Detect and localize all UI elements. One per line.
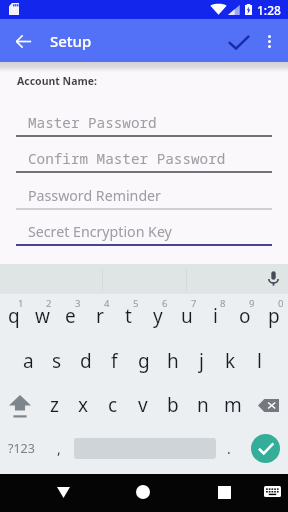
button[interactable]: w (28, 298, 56, 334)
staticText: q (8, 303, 20, 329)
staticText: j (199, 348, 204, 374)
staticText: b (167, 392, 179, 418)
button[interactable]: Master Password (16, 109, 272, 137)
staticText: Account Name: (17, 74, 97, 88)
button[interactable]: Hide keyboard (256, 475, 288, 507)
button[interactable]: k (216, 343, 245, 379)
staticText: x (78, 392, 89, 418)
staticText: 1 (18, 297, 24, 310)
button[interactable]: c (98, 387, 128, 423)
button[interactable]: s (42, 343, 71, 379)
staticText: Master Password (28, 113, 157, 132)
button[interactable]: d (71, 343, 100, 379)
staticText: e (65, 303, 76, 329)
button[interactable]: Password Reminder (16, 182, 272, 210)
button[interactable]: More options (254, 26, 284, 56)
button[interactable]: z (40, 387, 69, 423)
button[interactable]: b (158, 387, 188, 423)
staticText: 4 (104, 297, 110, 310)
staticText: k (225, 348, 236, 374)
staticText: 7 (191, 297, 197, 310)
button[interactable]: e (56, 298, 85, 334)
staticText: 9 (249, 297, 255, 310)
button[interactable]: Secret Encryption Key (16, 218, 272, 246)
button[interactable]: Save (222, 25, 256, 59)
button[interactable]: m (218, 387, 248, 423)
staticText: , (57, 439, 61, 458)
button[interactable]: Back (8, 26, 38, 56)
staticText: t (125, 303, 132, 329)
button[interactable]: . (216, 430, 242, 466)
staticText: h (167, 348, 179, 374)
staticText: 8 (220, 297, 226, 310)
staticText: Setup (50, 31, 92, 51)
button[interactable]: f (100, 343, 129, 379)
button[interactable]: ?123 (0, 430, 43, 466)
button[interactable]: n (188, 387, 218, 423)
staticText: Secret Encryption Key (28, 222, 172, 241)
staticText: c (108, 392, 118, 418)
staticText: Password Reminder (28, 186, 161, 205)
button[interactable]: Done (251, 434, 280, 463)
staticText: 2 (46, 297, 52, 310)
button[interactable]: l (245, 343, 274, 379)
button[interactable]: x (69, 387, 98, 423)
staticText: f (111, 348, 118, 374)
button[interactable]: Backspace (248, 387, 288, 423)
staticText: u (181, 303, 193, 329)
button[interactable]: p (259, 298, 288, 334)
staticText: 6 (162, 297, 168, 310)
button[interactable]: v (128, 387, 158, 423)
button[interactable]: g (129, 343, 158, 379)
staticText: z (50, 392, 59, 418)
button[interactable]: j (187, 343, 216, 379)
staticText: . (227, 439, 231, 458)
staticText: v (138, 392, 148, 418)
button[interactable]: h (158, 343, 187, 379)
button[interactable]: o (230, 298, 259, 334)
button[interactable]: Home (126, 475, 160, 509)
button[interactable]: Voice input (262, 267, 284, 289)
button[interactable]: Recent apps (207, 475, 241, 509)
staticText: Confirm Master Password (28, 149, 226, 168)
staticText: 3 (75, 297, 81, 310)
button[interactable]: a (14, 343, 42, 379)
staticText: i (213, 303, 218, 329)
button[interactable]: y (143, 298, 172, 334)
button[interactable]: i (201, 298, 230, 334)
staticText: 5 (133, 297, 139, 310)
staticText: w (35, 303, 50, 329)
staticText: r (96, 303, 104, 329)
staticText: y (153, 303, 163, 329)
button[interactable]: r (85, 298, 114, 334)
staticText: ?123 (8, 440, 35, 457)
button[interactable]: Shift (0, 387, 40, 423)
button[interactable]: t (114, 298, 143, 334)
button[interactable]: u (172, 298, 201, 334)
staticText: n (197, 392, 209, 418)
button[interactable]: Back (46, 475, 80, 509)
button[interactable]: Confirm Master Password (16, 145, 272, 173)
staticText: m (224, 392, 242, 418)
staticText: g (138, 348, 150, 374)
staticText: l (257, 348, 262, 374)
staticText: 0 (278, 297, 284, 310)
staticText: a (23, 348, 34, 374)
staticText: 1:28 (257, 2, 281, 18)
button[interactable]: q (0, 298, 28, 334)
button[interactable]: , (43, 430, 74, 466)
staticText: o (239, 303, 251, 329)
staticText: s (52, 348, 62, 374)
staticText: d (80, 348, 92, 374)
staticText: p (268, 303, 280, 329)
